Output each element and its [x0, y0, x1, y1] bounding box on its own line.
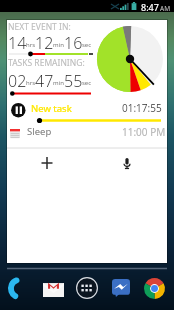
staticText: New task: [31, 102, 72, 115]
button[interactable]: Sleep 11:00 PM: [7, 122, 167, 146]
staticText: sec: [82, 41, 92, 49]
staticText: AM: [160, 4, 171, 13]
button[interactable]: Chrome: [138, 272, 170, 304]
staticText: 14: [8, 32, 27, 54]
staticText: TASKS REMAINING:: [8, 57, 85, 69]
button[interactable]: Messenger: [105, 272, 137, 304]
staticText: Sleep: [27, 125, 52, 138]
staticText: 16: [64, 32, 83, 54]
staticText: min: [53, 41, 64, 49]
staticText: hrs: [26, 79, 36, 87]
staticText: 8:47: [141, 1, 159, 13]
staticText: sec: [82, 79, 92, 87]
button[interactable]: Apps: [71, 272, 103, 304]
staticText: 02: [8, 70, 27, 92]
button[interactable]: New task running: [7, 97, 167, 119]
staticText: 55: [64, 70, 83, 92]
button[interactable]: Gmail: [37, 272, 69, 304]
staticText: 47: [35, 70, 54, 92]
staticText: 01:17:55: [122, 101, 162, 115]
button[interactable]: Add task: [27, 150, 67, 176]
staticText: NEXT EVENT IN:: [8, 21, 71, 33]
button[interactable]: Phone: [2, 272, 34, 304]
staticText: 11:00 PM: [122, 125, 166, 139]
staticText: 12: [35, 32, 54, 54]
staticText: min: [53, 79, 64, 87]
staticText: hrs: [26, 41, 36, 49]
button[interactable]: Voice input: [107, 150, 147, 176]
